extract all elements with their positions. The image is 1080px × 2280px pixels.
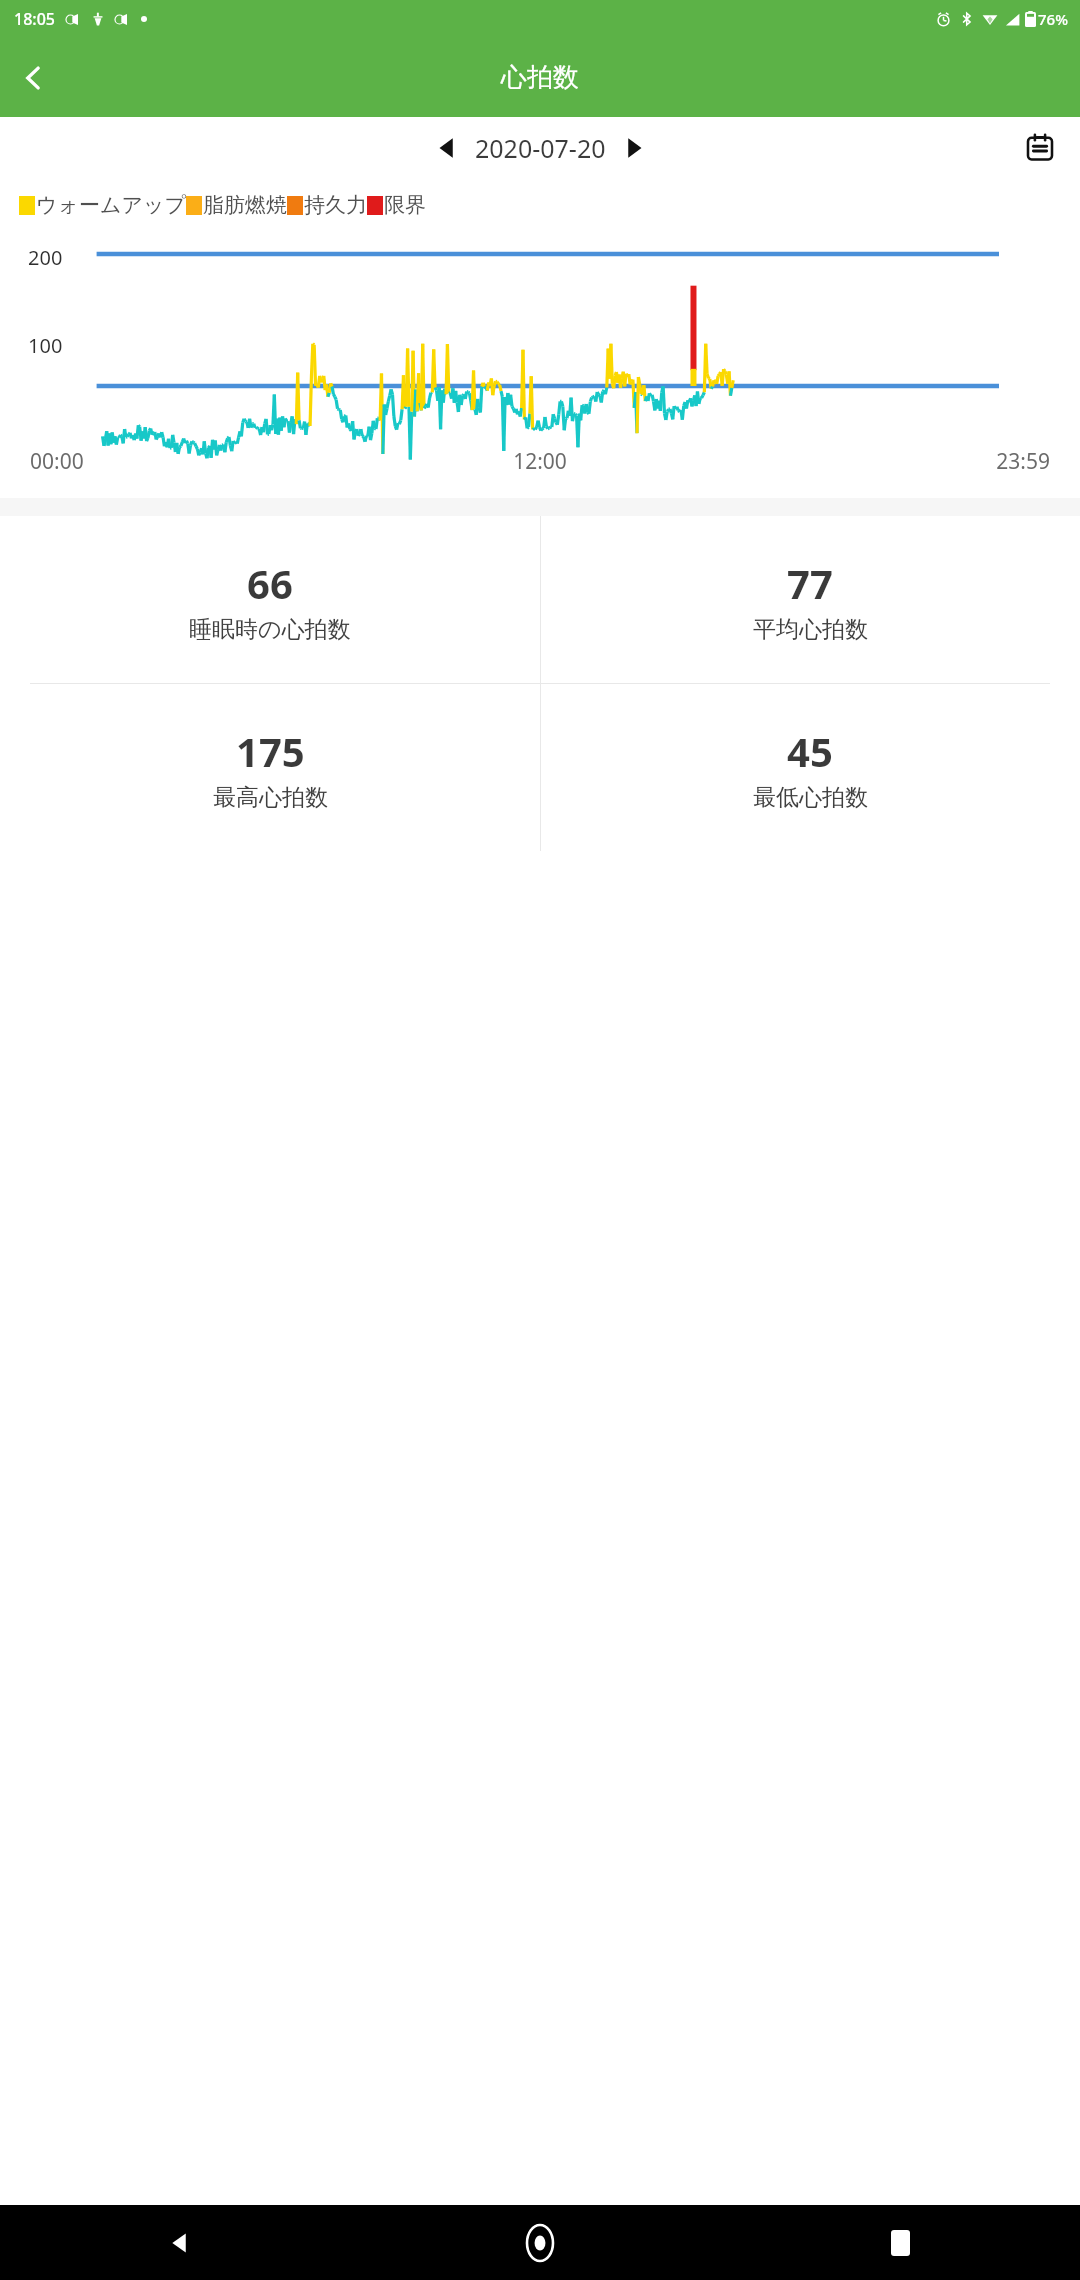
- button[interactable]: 175: [0, 684, 540, 851]
- button[interactable]: 66: [0, 516, 540, 683]
- staticText: 12:00: [370, 447, 710, 476]
- staticText: 最低心拍数: [753, 783, 868, 812]
- button[interactable]: Back: [6, 50, 62, 106]
- staticText: 45: [787, 724, 833, 778]
- staticText: 76%: [1038, 9, 1068, 29]
- staticText: 77: [787, 556, 833, 610]
- staticText: 66: [247, 556, 293, 610]
- staticText: 100: [28, 332, 63, 359]
- staticText: 持久力: [304, 192, 367, 218]
- button[interactable]: 77: [540, 516, 1080, 683]
- staticText: ウォームアップ: [36, 192, 186, 218]
- button[interactable]: Recent apps: [720, 2205, 1080, 2280]
- button[interactable]: Next day: [612, 126, 656, 170]
- staticText: 18:05: [14, 8, 55, 30]
- staticText: 限界: [384, 192, 426, 218]
- button[interactable]: Previous day: [425, 126, 469, 170]
- button[interactable]: Records: [1014, 122, 1066, 174]
- staticText: 2020-07-20: [475, 131, 606, 165]
- staticText: 脂肪燃焼: [203, 192, 287, 218]
- staticText: 200: [28, 244, 63, 271]
- staticText: 平均心拍数: [753, 615, 868, 644]
- staticText: 00:00: [30, 447, 370, 476]
- button[interactable]: Back: [0, 2205, 360, 2280]
- staticText: 23:59: [710, 447, 1050, 476]
- staticText: 心拍数: [501, 61, 579, 94]
- staticText: 最高心拍数: [213, 783, 328, 812]
- button[interactable]: Home: [360, 2205, 720, 2280]
- staticText: 175: [236, 724, 305, 778]
- staticText: 睡眠時の心拍数: [189, 615, 351, 644]
- button[interactable]: 45: [540, 684, 1080, 851]
